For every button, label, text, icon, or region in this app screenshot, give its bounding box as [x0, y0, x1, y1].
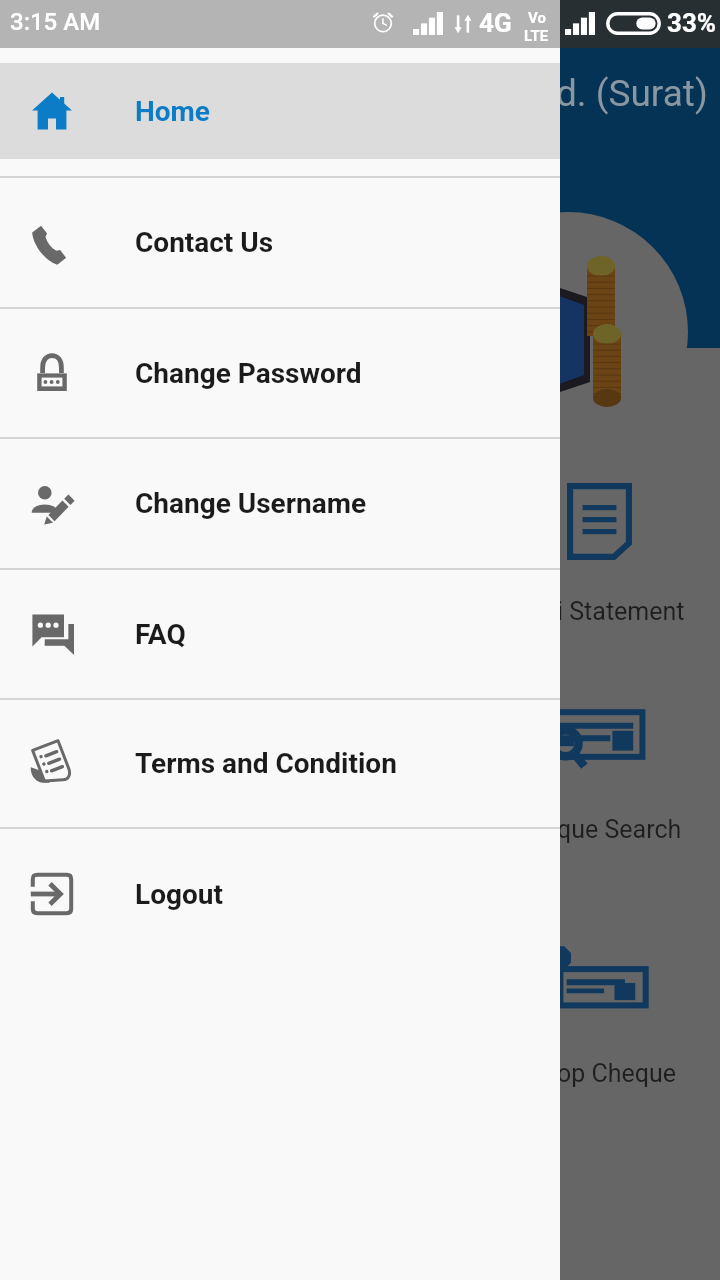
- button[interactable]: Contact Us: [0, 178, 560, 307]
- staticText: Change Password: [135, 357, 362, 390]
- button[interactable]: Change Password: [0, 309, 560, 437]
- staticText: 4G: [479, 8, 512, 38]
- staticText: LTE: [524, 27, 549, 45]
- staticText: Logout: [135, 878, 223, 911]
- staticText: Contact Us: [135, 226, 274, 259]
- staticText: 3:15 AM: [10, 8, 101, 36]
- staticText: 33%: [667, 8, 717, 38]
- staticText: d. (Surat): [556, 72, 708, 115]
- staticText: Terms and Condition: [135, 747, 397, 780]
- staticText: que Search: [557, 815, 682, 844]
- button[interactable]: Logout: [0, 829, 560, 959]
- staticText: Home: [135, 95, 210, 128]
- button[interactable]: Home: [0, 63, 560, 176]
- button[interactable]: Change Username: [0, 439, 560, 568]
- staticText: Change Username: [135, 487, 367, 520]
- button[interactable]: Terms and Condition: [0, 700, 560, 827]
- staticText: FAQ: [135, 618, 186, 651]
- staticText: i Statement: [557, 597, 685, 626]
- button[interactable]: FAQ: [0, 570, 560, 698]
- staticText: op Cheque: [557, 1059, 677, 1088]
- staticText: Vo: [528, 9, 546, 27]
